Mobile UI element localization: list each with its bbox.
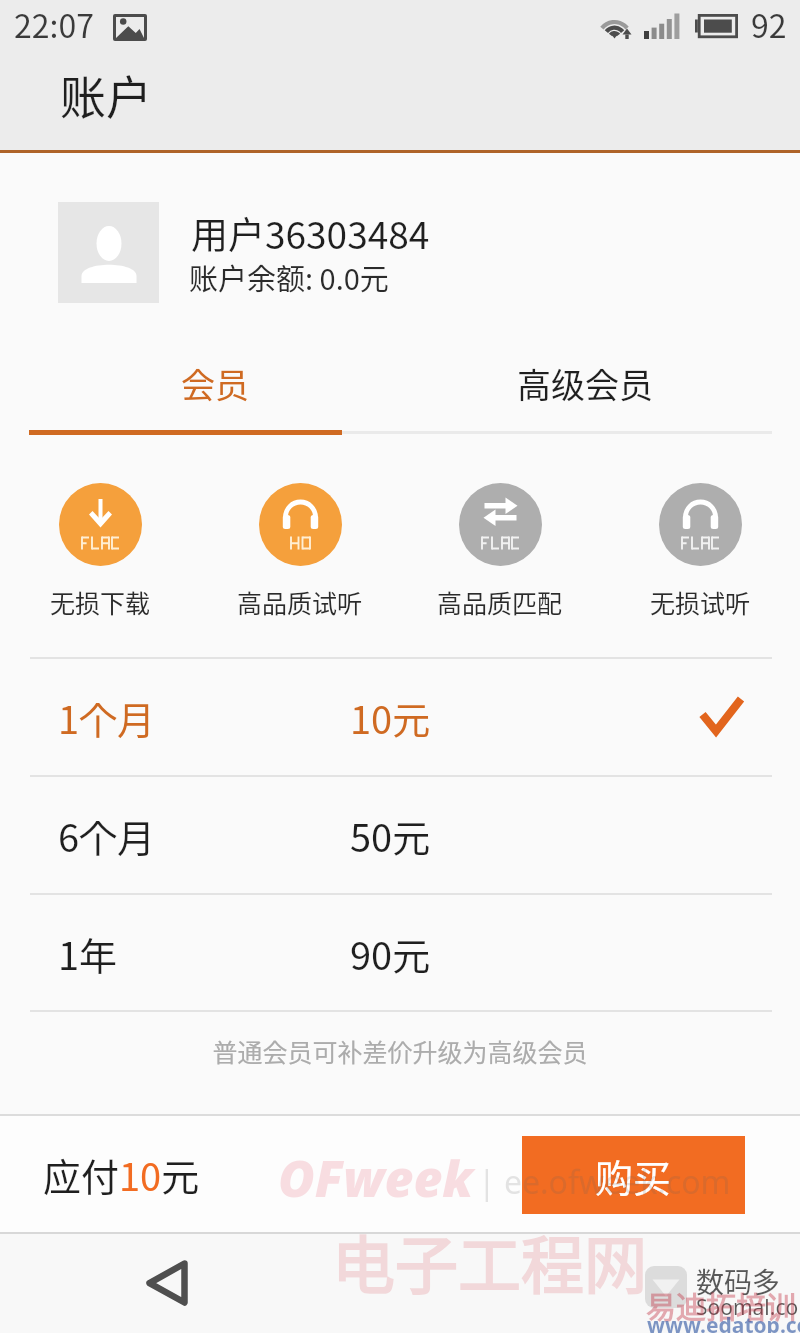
button[interactable]: 无损下载 [17, 483, 183, 615]
staticText: 用户36303484 [191, 206, 430, 260]
button[interactable]: 1年 [0, 895, 800, 1011]
staticText: 高级会员 [517, 359, 653, 408]
staticText: 22:07 [14, 1, 94, 47]
button[interactable]: 1个月 [0, 659, 800, 775]
staticText: 50元 [350, 808, 431, 863]
button[interactable]: 高品质匹配 [417, 483, 583, 615]
button[interactable]: 6个月 [0, 777, 800, 893]
staticText: Soomal.com [696, 1293, 800, 1322]
staticText: 账户余额: 0.0元 [189, 256, 389, 298]
staticText: 电子工程网 [332, 1215, 647, 1306]
button[interactable]: 高级会员 [401, 348, 772, 423]
button[interactable]: 会员 [29, 348, 401, 423]
staticText: 账户 [60, 61, 152, 128]
staticText: 1年 [58, 926, 118, 981]
staticText: 会员 [181, 359, 249, 408]
staticText: 90元 [350, 926, 431, 981]
staticText: OFweek [278, 1144, 474, 1212]
staticText: www.edatop.com [647, 1311, 800, 1333]
staticText: | ee.ofweek.com [478, 1160, 731, 1204]
staticText: 购买 [595, 1148, 672, 1203]
button[interactable]: 购买 [522, 1136, 745, 1214]
button[interactable]: 无损试听 [617, 483, 783, 615]
staticText: 易迪拓培训 [646, 1283, 796, 1326]
staticText: 1个月 [58, 690, 156, 745]
staticText: 普通会员可补差价升级为高级会员 [0, 1033, 800, 1069]
staticText: 无损下载 [50, 584, 151, 620]
staticText: 数码多 [696, 1261, 781, 1302]
staticText: 高品质匹配 [437, 584, 563, 620]
staticText: 应付10元 [43, 1147, 200, 1202]
button[interactable]: 高品质试听 [217, 483, 383, 615]
staticText: 6个月 [58, 808, 156, 863]
staticText: 10元 [350, 690, 431, 745]
button[interactable]: Back [130, 1247, 206, 1323]
staticText: 无损试听 [650, 584, 751, 620]
staticText: 92 [751, 1, 787, 47]
staticText: 高品质试听 [237, 584, 363, 620]
